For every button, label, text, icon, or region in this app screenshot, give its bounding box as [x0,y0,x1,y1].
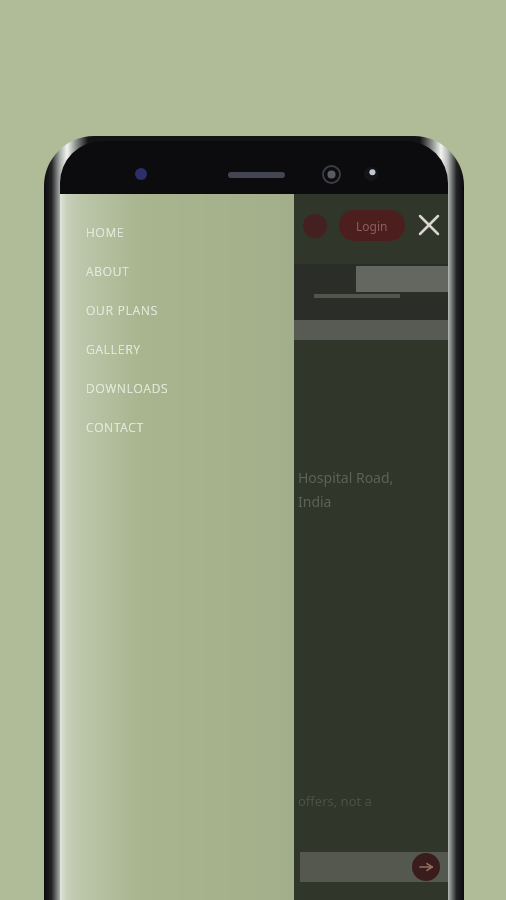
button[interactable]: Subscribe [300,852,448,882]
staticText: GALLERY [86,341,141,357]
button[interactable]: Subscribe [412,853,440,881]
staticText: India [298,492,332,511]
staticText: HOME [86,224,125,240]
button[interactable]: ABOUT [60,251,294,290]
button[interactable]: GALLERY [60,329,294,368]
staticText: offers, not a [298,792,372,810]
staticText: DOWNLOADS [86,380,169,396]
button[interactable]: HOME [60,212,294,251]
button[interactable]: CONTACT [60,407,294,446]
staticText: OUR PLANS [86,302,159,318]
button[interactable]: Login [339,210,405,241]
button[interactable]: OUR PLANS [60,290,294,329]
staticText: Hospital Road, [298,468,394,487]
button[interactable]: Close menu [410,206,448,244]
staticText: Login [356,218,388,234]
staticText: ABOUT [86,263,130,279]
staticText: CONTACT [86,419,144,435]
button[interactable]: DOWNLOADS [60,368,294,407]
